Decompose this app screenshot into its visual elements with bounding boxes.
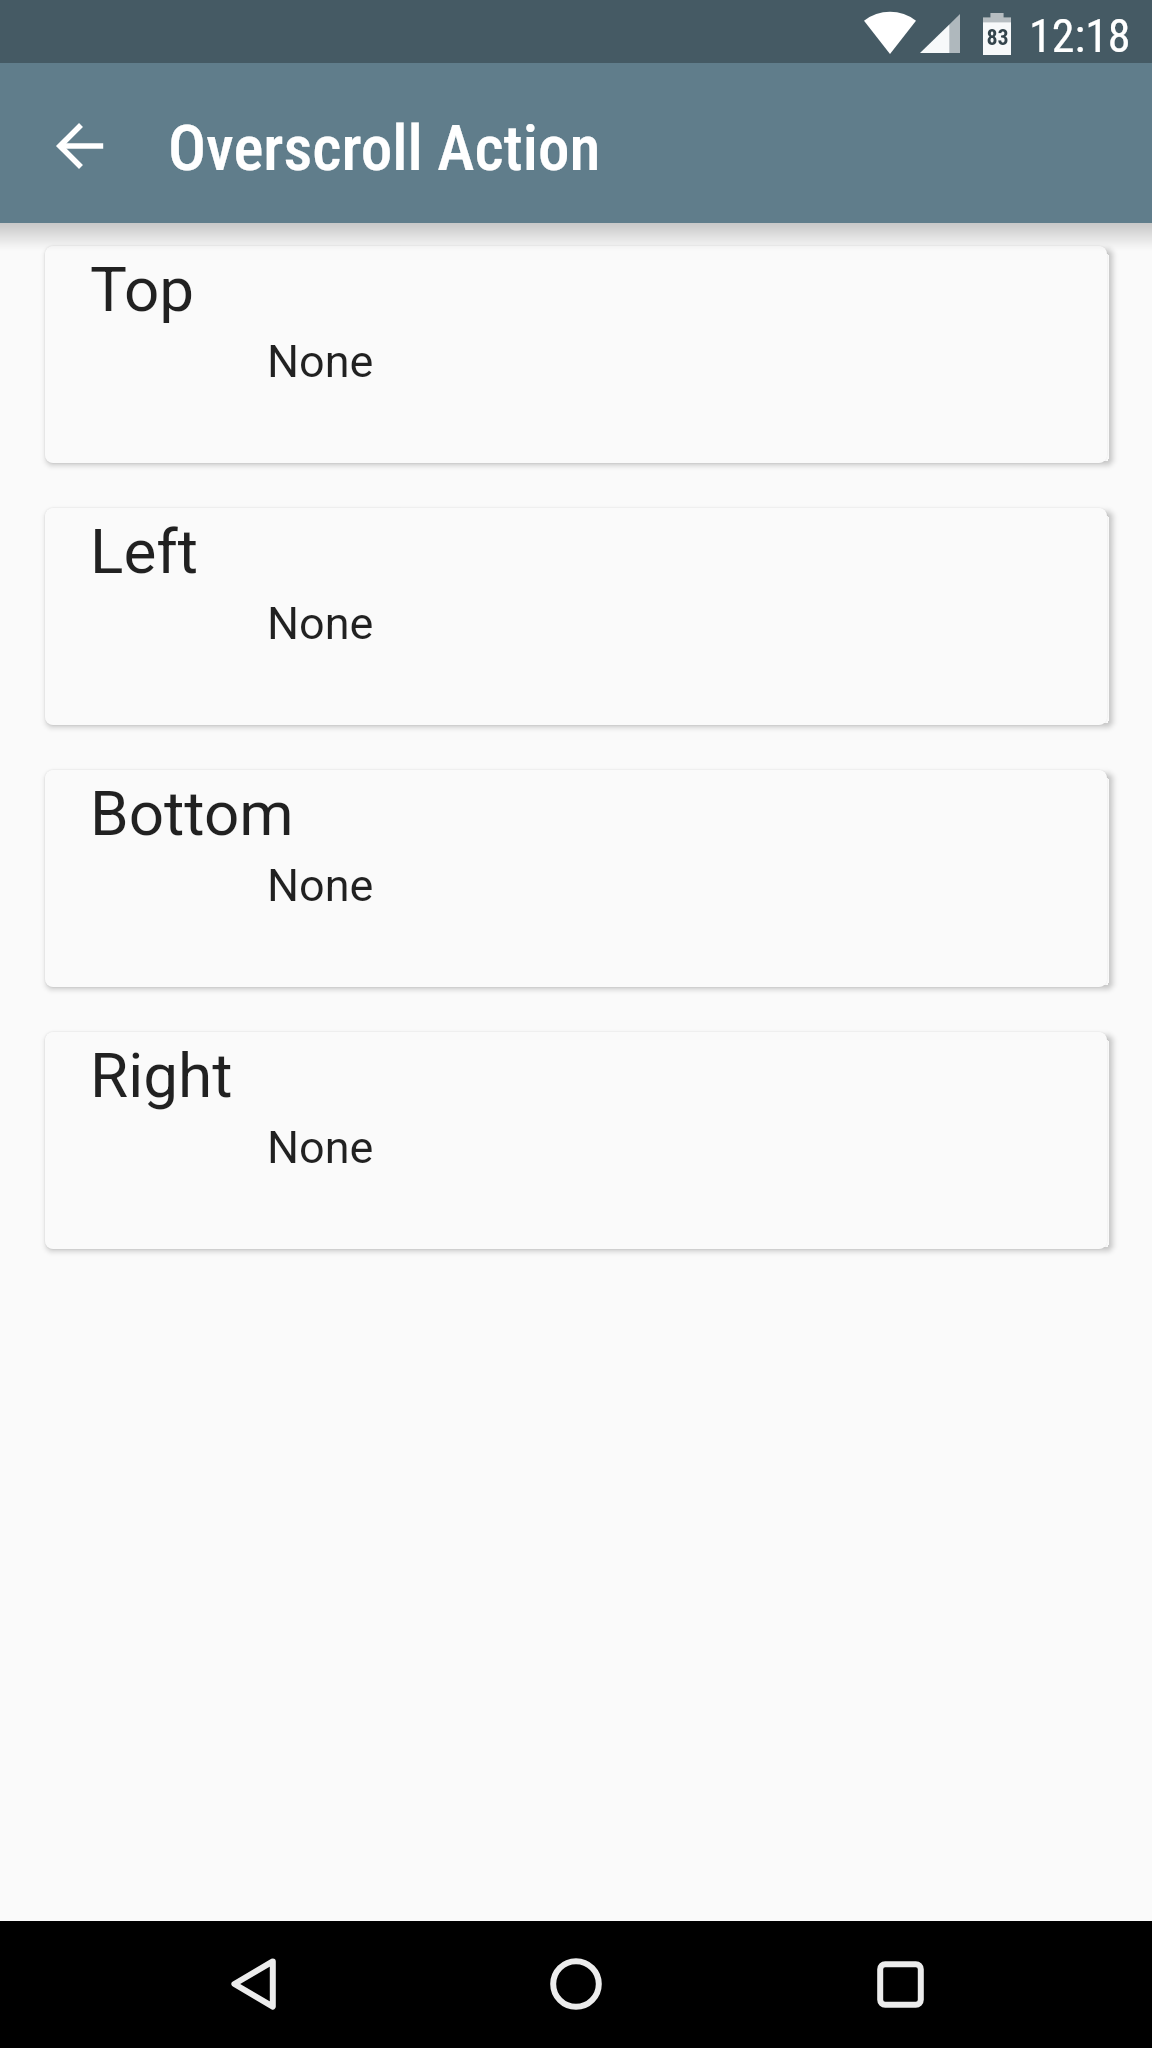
button[interactable]: Bottom <box>45 770 1107 987</box>
staticText: 83 <box>986 25 1009 51</box>
staticText: Overscroll Action <box>168 111 601 185</box>
staticText: None <box>267 1121 374 1174</box>
staticText: 12:18 <box>1029 9 1131 63</box>
button[interactable]: Left <box>45 508 1107 725</box>
button[interactable]: Right <box>45 1032 1107 1249</box>
staticText: None <box>267 597 374 650</box>
staticText: None <box>267 335 374 388</box>
staticText: Top <box>90 253 195 326</box>
button[interactable]: Top <box>45 246 1107 463</box>
button[interactable]: Back <box>193 1924 313 2044</box>
button[interactable]: Home <box>516 1924 636 2044</box>
staticText: Bottom <box>90 777 294 850</box>
button[interactable]: Recent apps <box>840 1924 960 2044</box>
staticText: Left <box>90 515 199 588</box>
staticText: Right <box>90 1039 233 1112</box>
staticText: None <box>267 859 374 912</box>
button[interactable]: Navigate up <box>35 100 127 192</box>
